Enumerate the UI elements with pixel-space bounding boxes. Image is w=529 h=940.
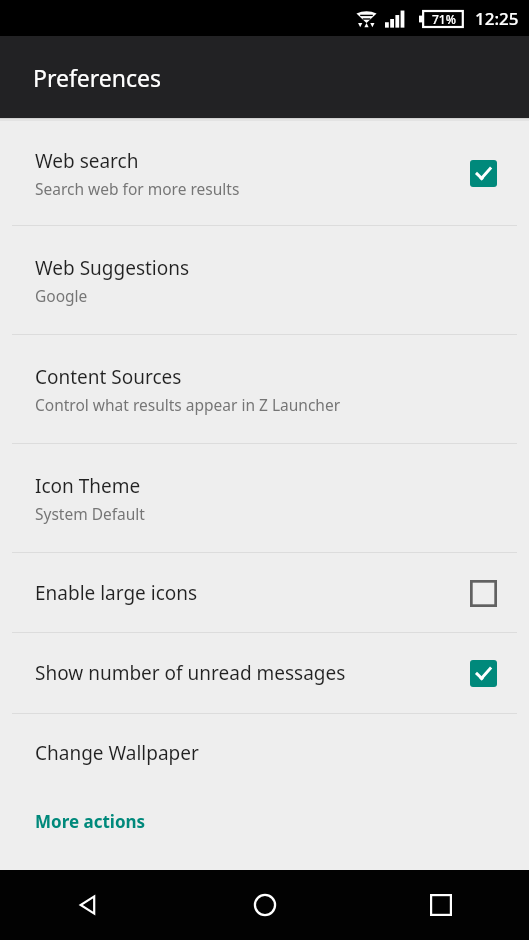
staticText: Search web for more results bbox=[35, 178, 240, 199]
button[interactable]: Enabled checkbox bbox=[461, 651, 505, 695]
staticText: 71% bbox=[432, 11, 456, 27]
staticText: Google bbox=[35, 285, 88, 306]
button[interactable]: Enable large icons bbox=[0, 553, 529, 632]
staticText: More actions bbox=[35, 810, 146, 833]
button[interactable]: Web search bbox=[0, 121, 529, 225]
button[interactable]: Home bbox=[177, 870, 353, 940]
button[interactable]: Recent apps bbox=[353, 870, 529, 940]
button[interactable]: Back bbox=[0, 870, 177, 940]
button[interactable]: Icon Theme bbox=[0, 444, 529, 552]
staticText: Change Wallpaper bbox=[35, 740, 509, 766]
staticText: Content Sources bbox=[35, 364, 182, 390]
button[interactable]: Content Sources bbox=[0, 335, 529, 443]
button[interactable]: More actions bbox=[0, 792, 529, 850]
staticText: Control what results appear in Z Launche… bbox=[35, 394, 341, 415]
staticText: Preferences bbox=[33, 62, 162, 93]
staticText: Enable large icons bbox=[35, 580, 461, 606]
button[interactable]: Disabled checkbox bbox=[461, 571, 505, 615]
staticText: Web search bbox=[35, 148, 139, 174]
staticText: Web Suggestions bbox=[35, 255, 190, 281]
button[interactable]: Enabled checkbox bbox=[461, 151, 505, 195]
staticText: System Default bbox=[35, 503, 145, 524]
button[interactable]: Web Suggestions bbox=[0, 226, 529, 334]
button[interactable]: Change Wallpaper bbox=[0, 714, 529, 792]
staticText: Icon Theme bbox=[35, 473, 141, 499]
button[interactable]: Show number of unread messages bbox=[0, 633, 529, 713]
staticText: 12:25 bbox=[475, 7, 519, 30]
staticText: Show number of unread messages bbox=[35, 660, 461, 686]
